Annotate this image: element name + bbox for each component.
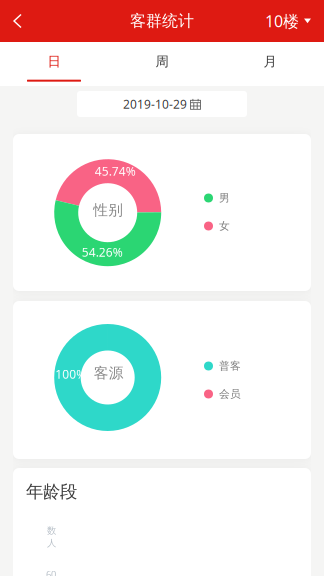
staticText: 100% [55,366,86,382]
button[interactable]: 周 [108,42,216,86]
staticText: 女 [219,219,230,232]
staticText: 会员 [219,387,241,400]
staticText: 45.74% [95,163,136,179]
staticText: 日 [47,53,60,70]
button[interactable]: Back [0,0,40,42]
staticText: 客群统计 [130,11,194,31]
button[interactable]: 2019-10-29 [77,91,247,117]
staticText: 年龄段 [26,481,77,502]
staticText: 2019-10-29 [123,96,187,112]
staticText: 60 [46,568,56,576]
staticText: 月 [263,53,276,70]
button[interactable]: 10楼 [253,0,324,42]
staticText: 数 [47,525,56,536]
staticText: 性别 [93,201,123,219]
staticText: 10楼 [265,10,299,32]
staticText: 周 [155,53,168,70]
staticText: 人 [47,537,56,549]
button[interactable]: 日 [0,42,108,86]
staticText: 54.26% [82,244,123,260]
staticText: 男 [219,191,230,204]
staticText: 客源 [94,364,124,382]
button[interactable]: 月 [216,42,324,86]
staticText: 普客 [219,359,241,372]
